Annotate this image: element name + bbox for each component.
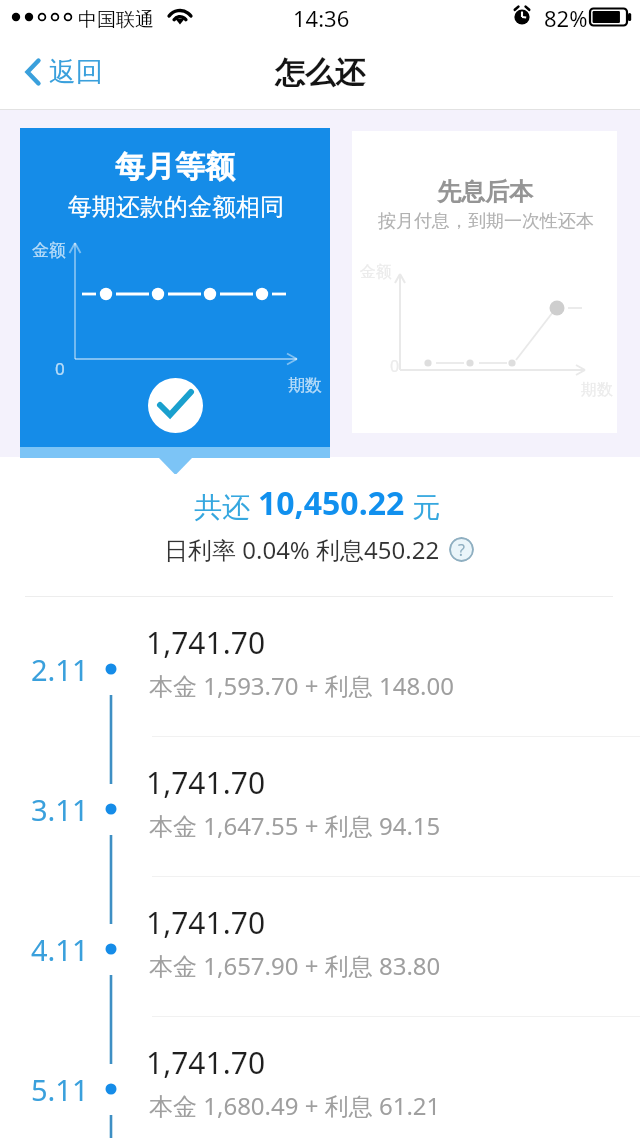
staticText: 元 (405, 487, 441, 525)
staticText: 2.11 (31, 650, 89, 689)
staticText: 10,450.22 (258, 481, 405, 525)
staticText: 怎么还 (275, 54, 365, 92)
staticText: 0 (390, 355, 400, 377)
staticText: 本金 1,657.90 + 利息 83.80 (149, 949, 441, 982)
button[interactable]: 每月等额 (20, 128, 330, 447)
staticText: 本金 1,593.70 + 利息 148.00 (149, 669, 454, 702)
staticText: 82% (544, 3, 588, 33)
staticText: 14:36 (293, 3, 350, 33)
button[interactable]: 4.11 (0, 877, 640, 1017)
staticText: 本金 1,680.49 + 利息 61.21 (149, 1089, 441, 1122)
staticText: 每月等额 (115, 148, 235, 186)
staticText: 1,741.70 (146, 762, 266, 803)
staticText: 4.11 (31, 930, 89, 969)
staticText: 期数 (581, 380, 613, 400)
button[interactable]: 返回 (0, 50, 121, 104)
staticText: 1,741.70 (146, 622, 266, 663)
staticText: 共还 (194, 487, 258, 525)
button[interactable]: 帮助 (449, 537, 474, 562)
button[interactable]: 先息后本 (352, 131, 617, 433)
staticText: 5.11 (31, 1070, 89, 1109)
staticText: 按月付息，到期一次性还本 (378, 210, 594, 233)
staticText: 金额 (360, 262, 392, 282)
staticText: 金额 (32, 240, 66, 261)
staticText: 1,741.70 (146, 902, 266, 943)
staticText: 中国联通 (78, 8, 154, 32)
button[interactable]: 3.11 (0, 737, 640, 877)
staticText: 日利率 0.04% 利息450.22 (164, 533, 440, 566)
button[interactable]: 2.11 (0, 597, 640, 737)
staticText: 先息后本 (437, 177, 533, 207)
button[interactable]: 5.11 (0, 1017, 640, 1138)
staticText: 每期还款的金额相同 (68, 192, 284, 222)
staticText: 3.11 (31, 790, 89, 829)
staticText: 1,741.70 (146, 1042, 266, 1083)
staticText: 本金 1,647.55 + 利息 94.15 (149, 809, 441, 842)
staticText: 期数 (288, 375, 322, 396)
staticText: ? (458, 539, 465, 561)
staticText: 返回 (49, 55, 103, 89)
staticText: 0 (55, 357, 65, 380)
